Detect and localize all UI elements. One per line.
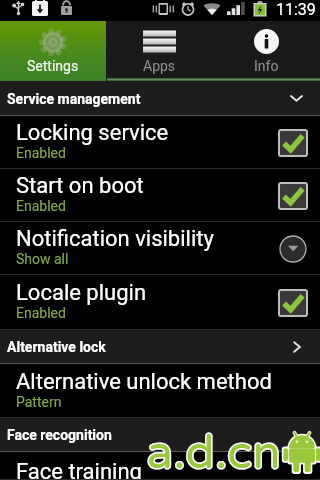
button[interactable]: Toggle [278, 129, 308, 157]
staticText: 11:39 [276, 0, 316, 19]
button[interactable]: Dropdown [278, 235, 308, 263]
staticText: Face recognition [7, 427, 112, 443]
staticText: a.d.cn [147, 426, 282, 478]
button[interactable]: Info [213, 21, 320, 81]
staticText: Info [254, 58, 279, 74]
staticText: Enabled [16, 198, 66, 214]
button[interactable]: Face training [0, 452, 320, 480]
button[interactable]: Face recognition [0, 418, 320, 452]
button[interactable]: Toggle [278, 182, 308, 210]
staticText: Enabled [16, 305, 66, 321]
button[interactable]: Toggle [278, 289, 308, 317]
staticText: Notification visibility [16, 226, 214, 252]
button[interactable]: Apps [106, 21, 213, 81]
button[interactable]: Service management [0, 81, 320, 116]
staticText: Face training [16, 459, 142, 480]
staticText: Settings [27, 58, 79, 74]
staticText: Apps [143, 58, 176, 74]
button[interactable]: Settings [0, 21, 106, 81]
button[interactable]: Locking service [0, 116, 320, 169]
staticText: Alternative unlock method [16, 369, 272, 395]
staticText: Service management [7, 91, 141, 107]
staticText: Enabled [16, 145, 66, 161]
button[interactable]: Start on boot [0, 169, 320, 222]
staticText: a.d.cn [147, 426, 282, 478]
staticText: Pattern [16, 394, 62, 410]
button[interactable]: Alternative unlock method [0, 364, 320, 418]
staticText: Locking service [16, 120, 169, 146]
staticText: Show all [16, 251, 69, 267]
button[interactable]: Alternative lock [0, 330, 320, 364]
staticText: Locale plugin [16, 280, 147, 306]
button[interactable]: Notification visibility [0, 222, 320, 275]
button[interactable]: Locale plugin [0, 275, 320, 330]
staticText: Start on boot [16, 173, 144, 199]
staticText: Alternative lock [7, 339, 106, 355]
